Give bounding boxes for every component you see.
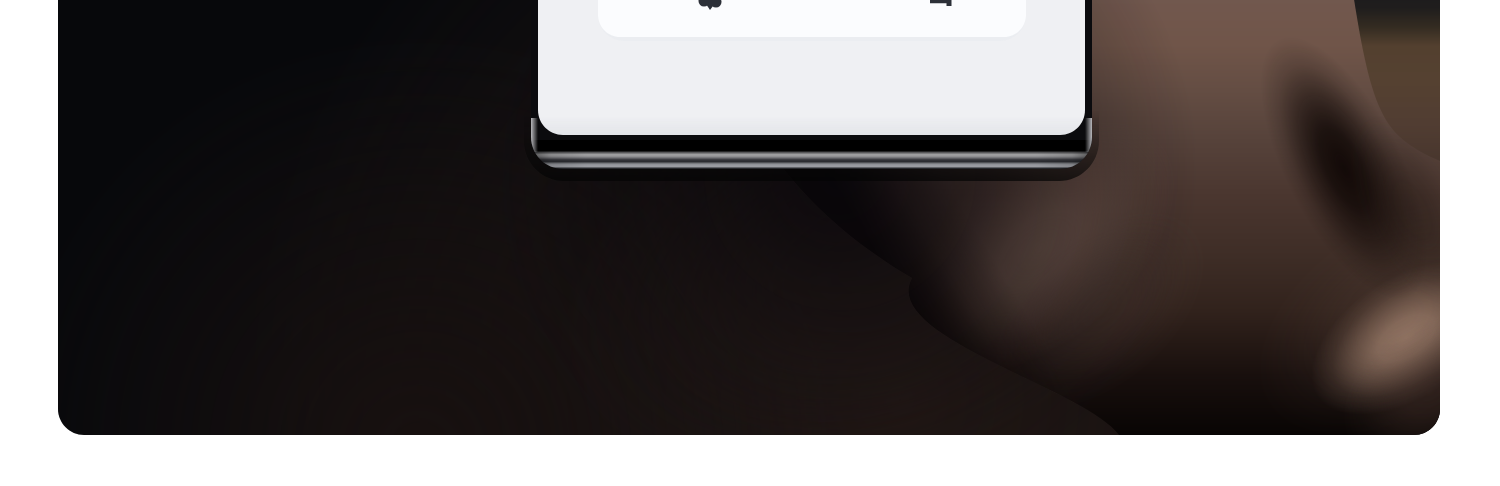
button[interactable]: Photo of a hand holding a phone: [0, 0, 1500, 486]
